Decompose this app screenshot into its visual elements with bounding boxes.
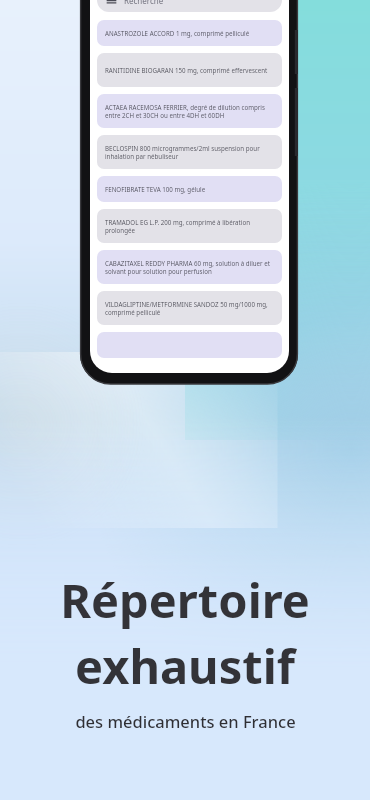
button[interactable]: FENOFIBRATE TEVA 100 mg, gélule [97,176,282,202]
staticText: FENOFIBRATE TEVA 100 mg, gélule [105,185,206,193]
staticText: exhaustif [75,634,295,698]
staticText: TRAMADOL EG L.P. 200 mg, comprimé à libé… [105,218,274,235]
button[interactable]: BECLOSPIN 800 microgrammes/2ml suspensio… [97,135,282,169]
button[interactable]: VILDAGLIPTINE/METFORMINE SANDOZ 50 mg/10… [97,291,282,325]
button[interactable]: CABAZITAXEL REDDY PHARMA 60 mg, solution… [97,250,282,284]
staticText: ACTAEA RACEMOSA FERRIER, degré de diluti… [105,103,274,120]
staticText: VILDAGLIPTINE/METFORMINE SANDOZ 50 mg/10… [105,300,274,317]
staticText: CABAZITAXEL REDDY PHARMA 60 mg, solution… [105,259,274,276]
button[interactable]: TRAMADOL EG L.P. 200 mg, comprimé à libé… [97,209,282,243]
staticText: RANITIDINE BIOGARAN 150 mg, comprimé eff… [105,66,268,74]
button[interactable]: ACTAEA RACEMOSA FERRIER, degré de diluti… [97,94,282,128]
button[interactable]: RANITIDINE BIOGARAN 150 mg, comprimé eff… [97,53,282,87]
button[interactable]: Menu [97,0,282,12]
staticText: Répertoire [60,568,310,632]
staticText: des médicaments en France [75,710,296,732]
staticText: BECLOSPIN 800 microgrammes/2ml suspensio… [105,144,274,161]
other: Menu [106,0,117,6]
button[interactable]: ANASTROZOLE ACCORD 1 mg, comprimé pellic… [97,20,282,46]
staticText: Recherche [124,0,164,6]
staticText: ANASTROZOLE ACCORD 1 mg, comprimé pellic… [105,29,250,37]
